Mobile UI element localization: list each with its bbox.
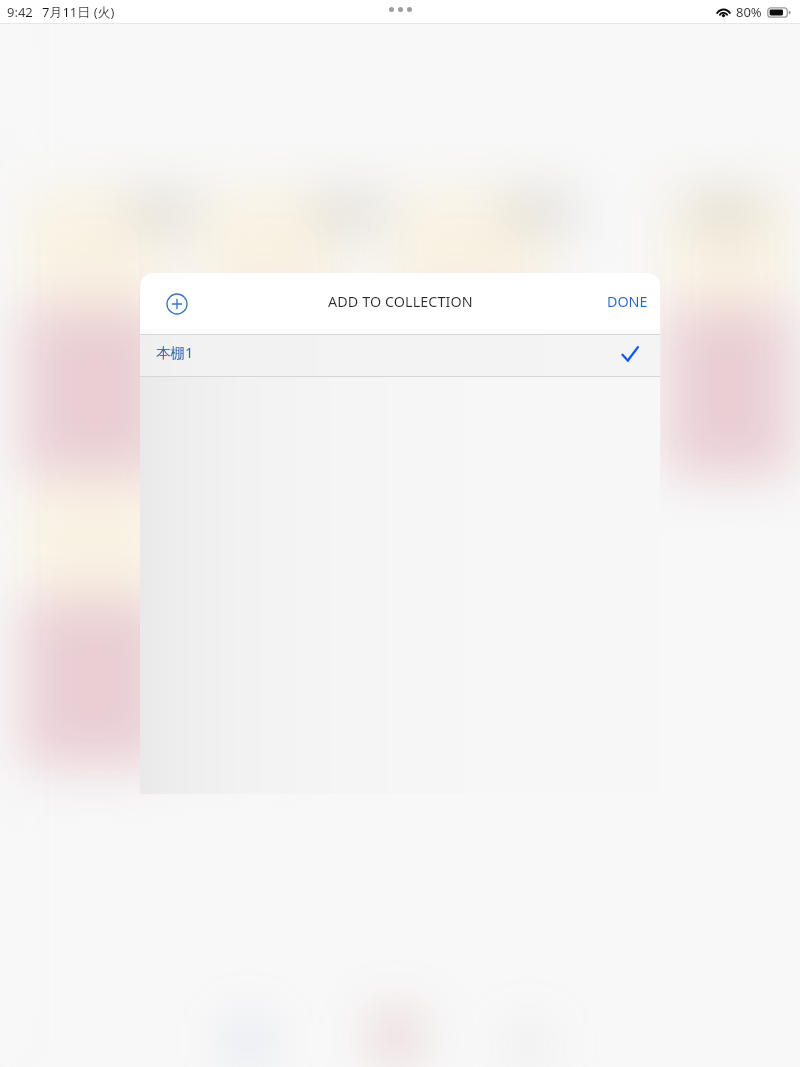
button[interactable]: Add collection: [155, 279, 199, 323]
button[interactable]: DONE: [601, 284, 654, 319]
staticText: 9:42: [7, 3, 33, 21]
staticText: ADD TO COLLECTION: [328, 292, 473, 311]
staticText: 本棚1: [156, 342, 194, 362]
staticText: 80%: [736, 3, 762, 21]
other: Selected: [621, 345, 639, 363]
button[interactable]: 本棚1: [140, 335, 660, 376]
staticText: 7月11日 (火): [42, 3, 115, 21]
staticText: DONE: [607, 292, 648, 311]
